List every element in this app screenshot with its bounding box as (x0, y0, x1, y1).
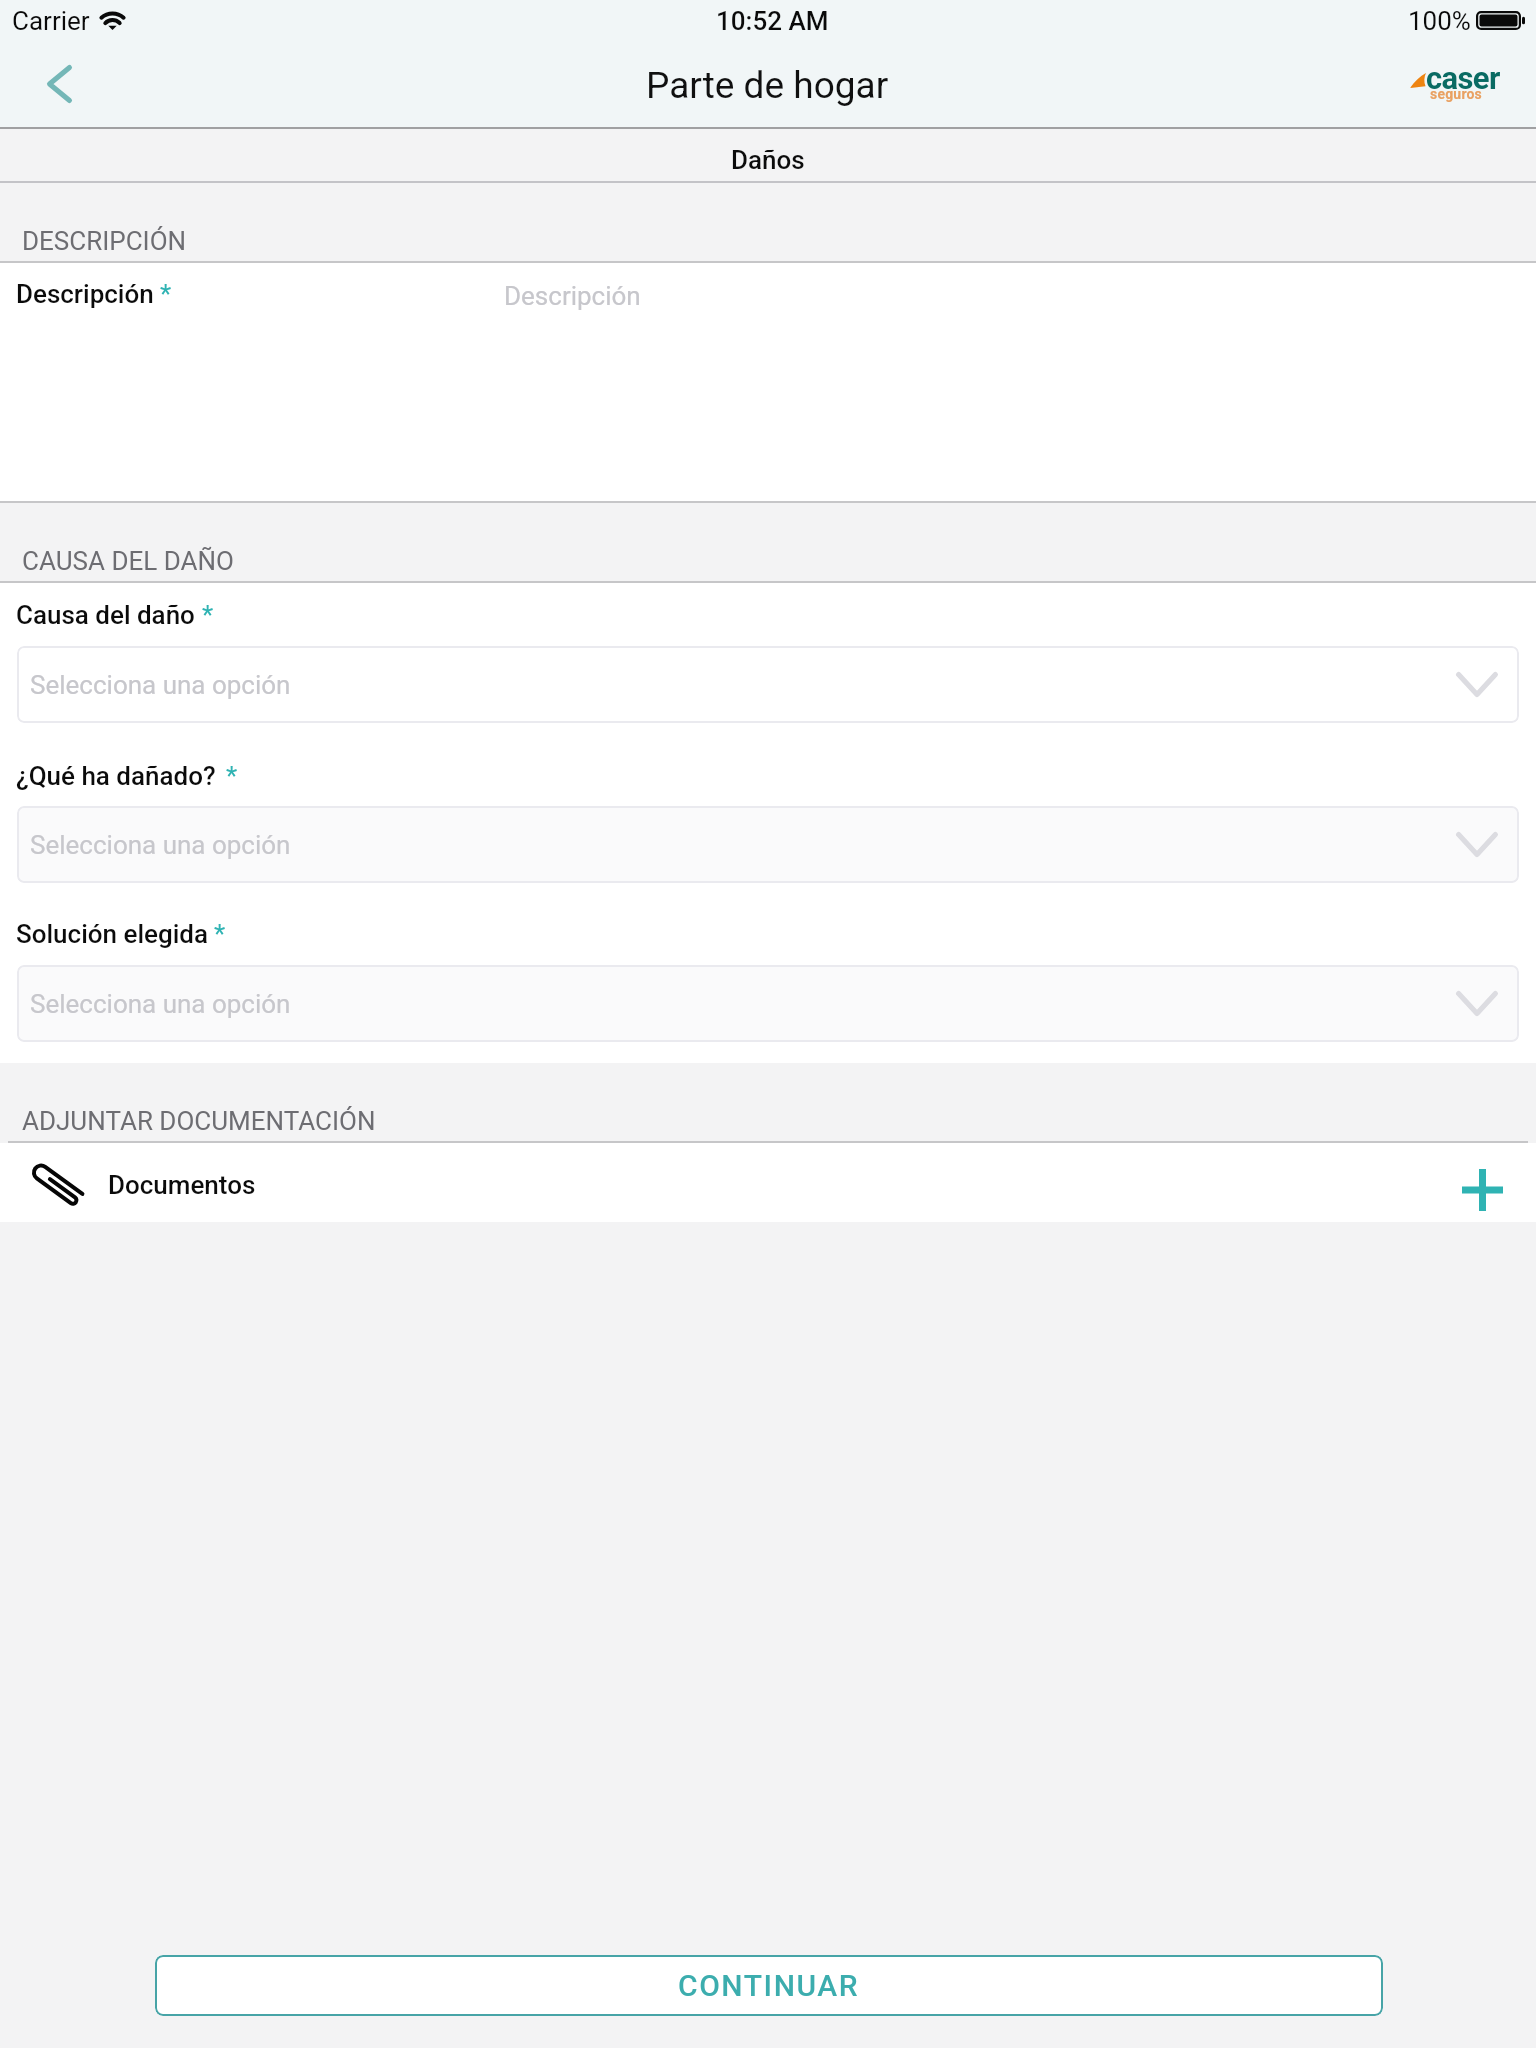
staticText: * (226, 761, 238, 791)
button[interactable]: Back (24, 55, 94, 113)
button[interactable]: CONTINUAR (155, 1955, 1383, 2016)
button[interactable]: Daños (0, 128, 1536, 181)
staticText: caser (1426, 60, 1500, 96)
staticText: seguros (1430, 86, 1483, 102)
button[interactable]: Descripción (0, 263, 1536, 501)
staticText: CONTINUAR (678, 1968, 860, 2003)
button[interactable]: Selecciona una opción (17, 646, 1519, 723)
staticText: Descripción (16, 279, 154, 309)
staticText: 100% (1408, 6, 1471, 36)
button[interactable]: Add document (1442, 1148, 1522, 1218)
staticText: Parte de hogar (646, 64, 889, 107)
staticText: 10:52 AM (716, 6, 829, 36)
staticText: Documentos (108, 1170, 256, 1200)
staticText: Daños (731, 145, 805, 175)
staticText: DESCRIPCIÓN (22, 226, 187, 256)
staticText: Selecciona una opción (30, 830, 291, 860)
staticText: Selecciona una opción (30, 670, 291, 700)
staticText: * (214, 919, 226, 949)
button[interactable]: Documentos (0, 1143, 1536, 1222)
staticText: Selecciona una opción (30, 989, 291, 1019)
staticText: Solución elegida (16, 919, 208, 949)
button[interactable]: Selecciona una opción (17, 806, 1519, 883)
staticText: * (202, 600, 214, 630)
staticText: Causa del daño (16, 600, 195, 630)
staticText: ADJUNTAR DOCUMENTACIÓN (22, 1106, 376, 1136)
staticText: * (160, 279, 172, 309)
staticText: CAUSA DEL DAÑO (22, 546, 234, 576)
staticText: ¿Qué ha dañado? (16, 761, 216, 791)
staticText: Descripción (504, 281, 641, 311)
staticText: Carrier (12, 6, 90, 36)
button[interactable]: Selecciona una opción (17, 965, 1519, 1042)
